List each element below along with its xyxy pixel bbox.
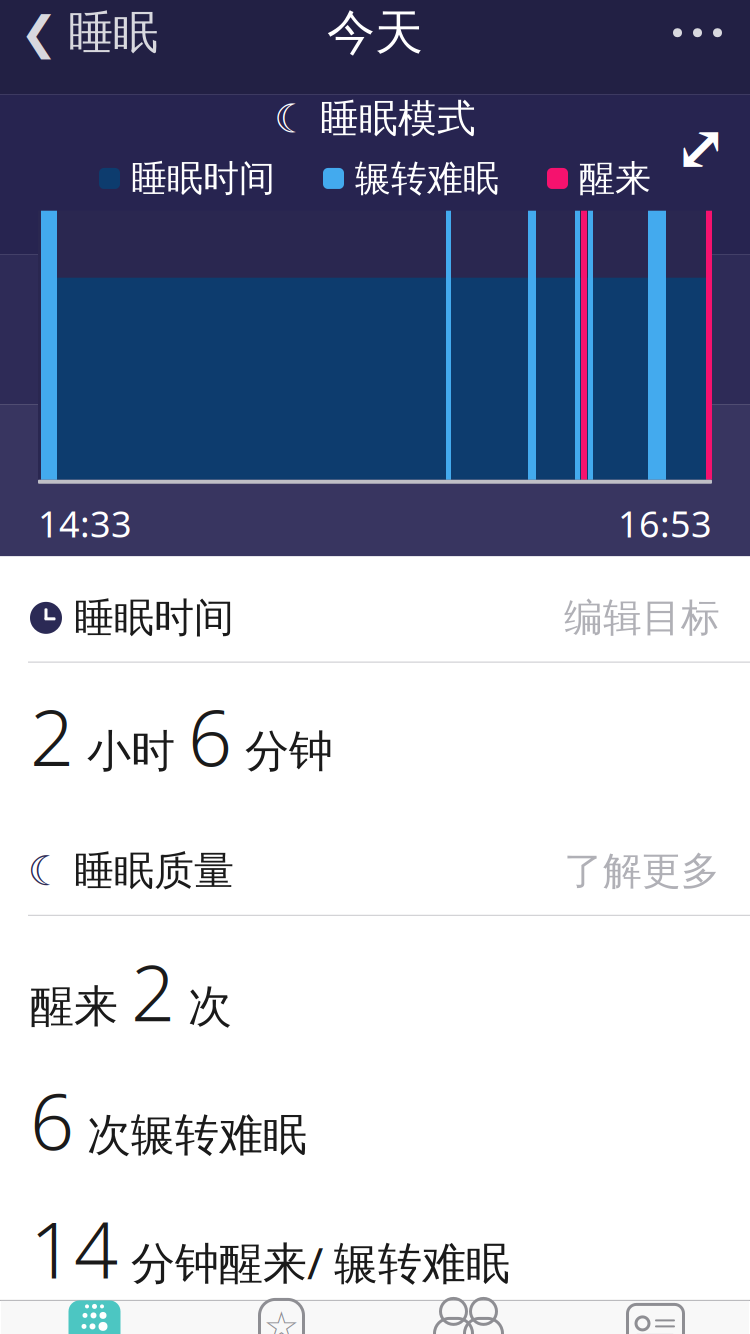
staticText: 睡眠 xyxy=(68,5,158,61)
staticText: 醒来 xyxy=(30,979,131,1033)
staticText: 了解更多 xyxy=(564,847,720,895)
button[interactable]: 数字面板 xyxy=(1,1301,188,1334)
staticText: 分钟醒来/ 辗转难眠 xyxy=(118,1233,510,1291)
staticText: 睡眠时间 xyxy=(74,593,234,642)
staticText: ☾ xyxy=(274,96,310,141)
staticText: 6 xyxy=(30,1068,74,1171)
staticText: 睡眠模式 xyxy=(320,95,476,142)
staticText: 6 xyxy=(188,685,232,787)
staticText: 睡眠时间 xyxy=(131,156,275,201)
staticText: 14:33 xyxy=(38,500,132,547)
button[interactable]: ❮ xyxy=(0,0,158,71)
button[interactable]: 编辑目标 xyxy=(544,586,720,650)
button[interactable]: ☆ xyxy=(188,1301,375,1334)
staticText: 今天 xyxy=(327,3,423,62)
staticText: 醒来 xyxy=(579,156,651,201)
staticText: 次 xyxy=(175,979,232,1033)
staticText: 辗转难眠 xyxy=(355,156,499,201)
staticText: ⤢ xyxy=(674,111,728,184)
staticText: 16:53 xyxy=(618,500,712,547)
button[interactable]: 朋友 xyxy=(375,1301,562,1334)
staticText: 2 xyxy=(30,685,74,787)
button[interactable]: 账户 xyxy=(562,1301,749,1334)
staticText: 编辑目标 xyxy=(564,594,720,642)
button[interactable]: 更多 xyxy=(673,12,750,53)
staticText: ☆ xyxy=(263,1304,299,1334)
staticText: 14 xyxy=(30,1197,118,1300)
button[interactable]: 全屏 xyxy=(666,113,736,183)
staticText: ❮ xyxy=(20,7,58,58)
staticText: 睡眠质量 xyxy=(74,846,234,896)
staticText: 小时 xyxy=(74,724,188,778)
staticText: 2 xyxy=(131,940,175,1042)
staticText: ☾ xyxy=(27,848,64,894)
staticText: 次辗转难眠 xyxy=(74,1108,307,1162)
button[interactable]: 了解更多 xyxy=(544,839,720,903)
staticText: 分钟 xyxy=(232,724,333,778)
